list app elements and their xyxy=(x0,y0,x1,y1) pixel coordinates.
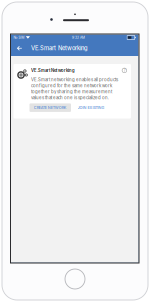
staticText: CREATE NETWORK xyxy=(34,105,67,110)
button[interactable]: Back xyxy=(14,40,25,56)
staticText: VE.Smart networking enables all products… xyxy=(31,77,118,100)
staticText: VE.Smart Networking xyxy=(31,68,75,73)
staticText: ? xyxy=(123,68,125,73)
button[interactable]: JOIN EXISTING xyxy=(71,103,111,112)
button[interactable]: CREATE NETWORK xyxy=(29,103,71,112)
staticText: No SIM xyxy=(13,36,24,39)
staticText: 9:32 AM xyxy=(72,36,85,39)
staticText: VE.Smart Networking xyxy=(31,45,88,52)
staticText: JOIN EXISTING xyxy=(77,105,104,110)
